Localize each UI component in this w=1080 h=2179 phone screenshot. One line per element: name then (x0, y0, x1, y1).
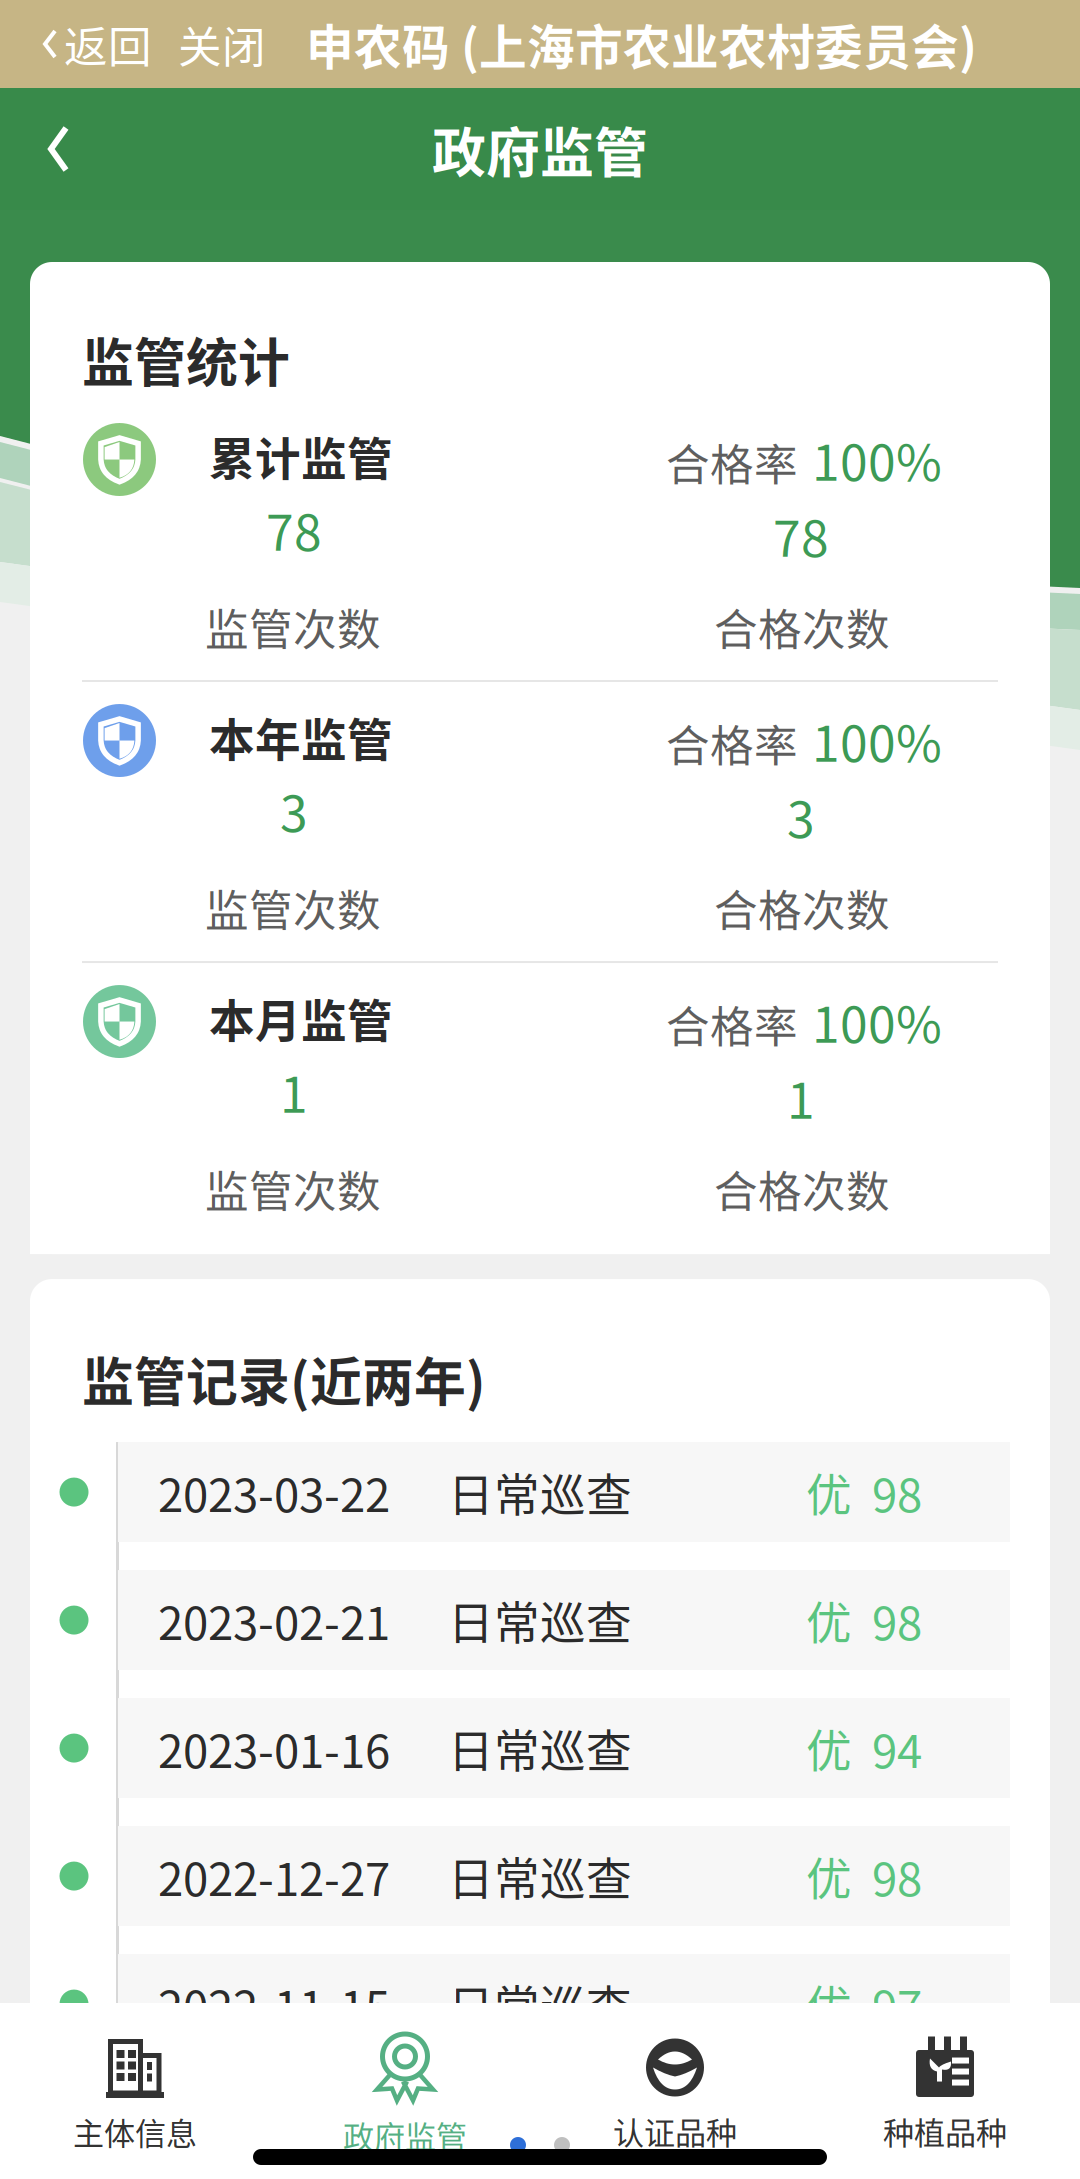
button[interactable]: 主体信息 (0, 2022, 270, 2160)
staticText: 78 (266, 493, 322, 565)
staticText: 合格率 (666, 430, 798, 493)
staticText: 日常巡查 (448, 1587, 632, 1653)
staticText: 监管次数 (205, 876, 381, 939)
staticText: 监管记录(近两年) (82, 1341, 486, 1416)
staticText: 累计监管 (209, 423, 393, 489)
staticText: 3 (787, 780, 815, 852)
staticText: 合格率 (666, 711, 798, 774)
staticText: 认证品种 (613, 2108, 737, 2153)
staticText: 日常巡查 (448, 1715, 632, 1781)
staticText: 优 (806, 1715, 852, 1781)
staticText: 优 (806, 1843, 852, 1909)
staticText: 100% (812, 704, 942, 776)
staticText: 1 (787, 1061, 815, 1133)
staticText: 返回 (64, 12, 152, 75)
staticText: 主体信息 (73, 2109, 197, 2154)
staticText: 2022-10-09 (158, 2099, 390, 2165)
staticText: 96 (872, 2099, 922, 2165)
staticText: 种植品种 (883, 2108, 1007, 2153)
button[interactable]: 种植品种 (810, 2022, 1080, 2159)
staticText: 1 (280, 1055, 308, 1127)
button[interactable]: 认证品种 (540, 2022, 810, 2159)
staticText: 合格次数 (714, 1157, 890, 1220)
staticText: 98 (872, 1587, 922, 1653)
staticText: 2023-02-21 (158, 1587, 390, 1653)
staticText: 日常巡查 (448, 1971, 632, 2037)
button[interactable]: Back (0, 103, 98, 195)
staticText: 优 (806, 1971, 852, 2037)
staticText: 本年监管 (209, 704, 393, 770)
staticText: 合格率 (666, 992, 798, 1055)
button[interactable]: 返回 (0, 12, 152, 75)
staticText: 94 (872, 1715, 922, 1781)
button[interactable]: 政府监管 (270, 2018, 540, 2163)
staticText: 3 (280, 774, 308, 846)
staticText: 优 (806, 1587, 852, 1653)
staticText: 政府监管 (343, 2112, 467, 2157)
button[interactable]: 关闭 (152, 12, 266, 75)
staticText: 98 (872, 1843, 922, 1909)
staticText: 100% (812, 423, 942, 495)
staticText: 2023-01-16 (158, 1715, 390, 1781)
staticText: 优 (806, 1459, 852, 1525)
staticText: 日常巡查 (448, 1459, 632, 1525)
staticText: 78 (773, 499, 829, 571)
staticText: 2022-12-27 (158, 1843, 390, 1909)
staticText: 98 (872, 1459, 922, 1525)
staticText: 97 (872, 1971, 922, 2037)
staticText: 监管次数 (205, 1157, 381, 1220)
staticText: 2022-11-15 (158, 1971, 390, 2037)
staticText: 合格次数 (714, 876, 890, 939)
staticText: 政府监管 (432, 110, 648, 188)
staticText: 日常巡查 (448, 2099, 632, 2165)
staticText: 优 (806, 2099, 852, 2165)
staticText: 申农码 (上海市农业农村委员会) (306, 9, 977, 78)
staticText: 日常巡查 (448, 1843, 632, 1909)
staticText: 100% (812, 985, 942, 1057)
staticText: 监管统计 (82, 322, 290, 397)
staticText: 监管次数 (205, 595, 381, 658)
staticText: 本月监管 (209, 985, 393, 1051)
staticText: 关闭 (178, 12, 266, 75)
staticText: 2023-03-22 (158, 1459, 390, 1525)
staticText: 合格次数 (714, 595, 890, 658)
